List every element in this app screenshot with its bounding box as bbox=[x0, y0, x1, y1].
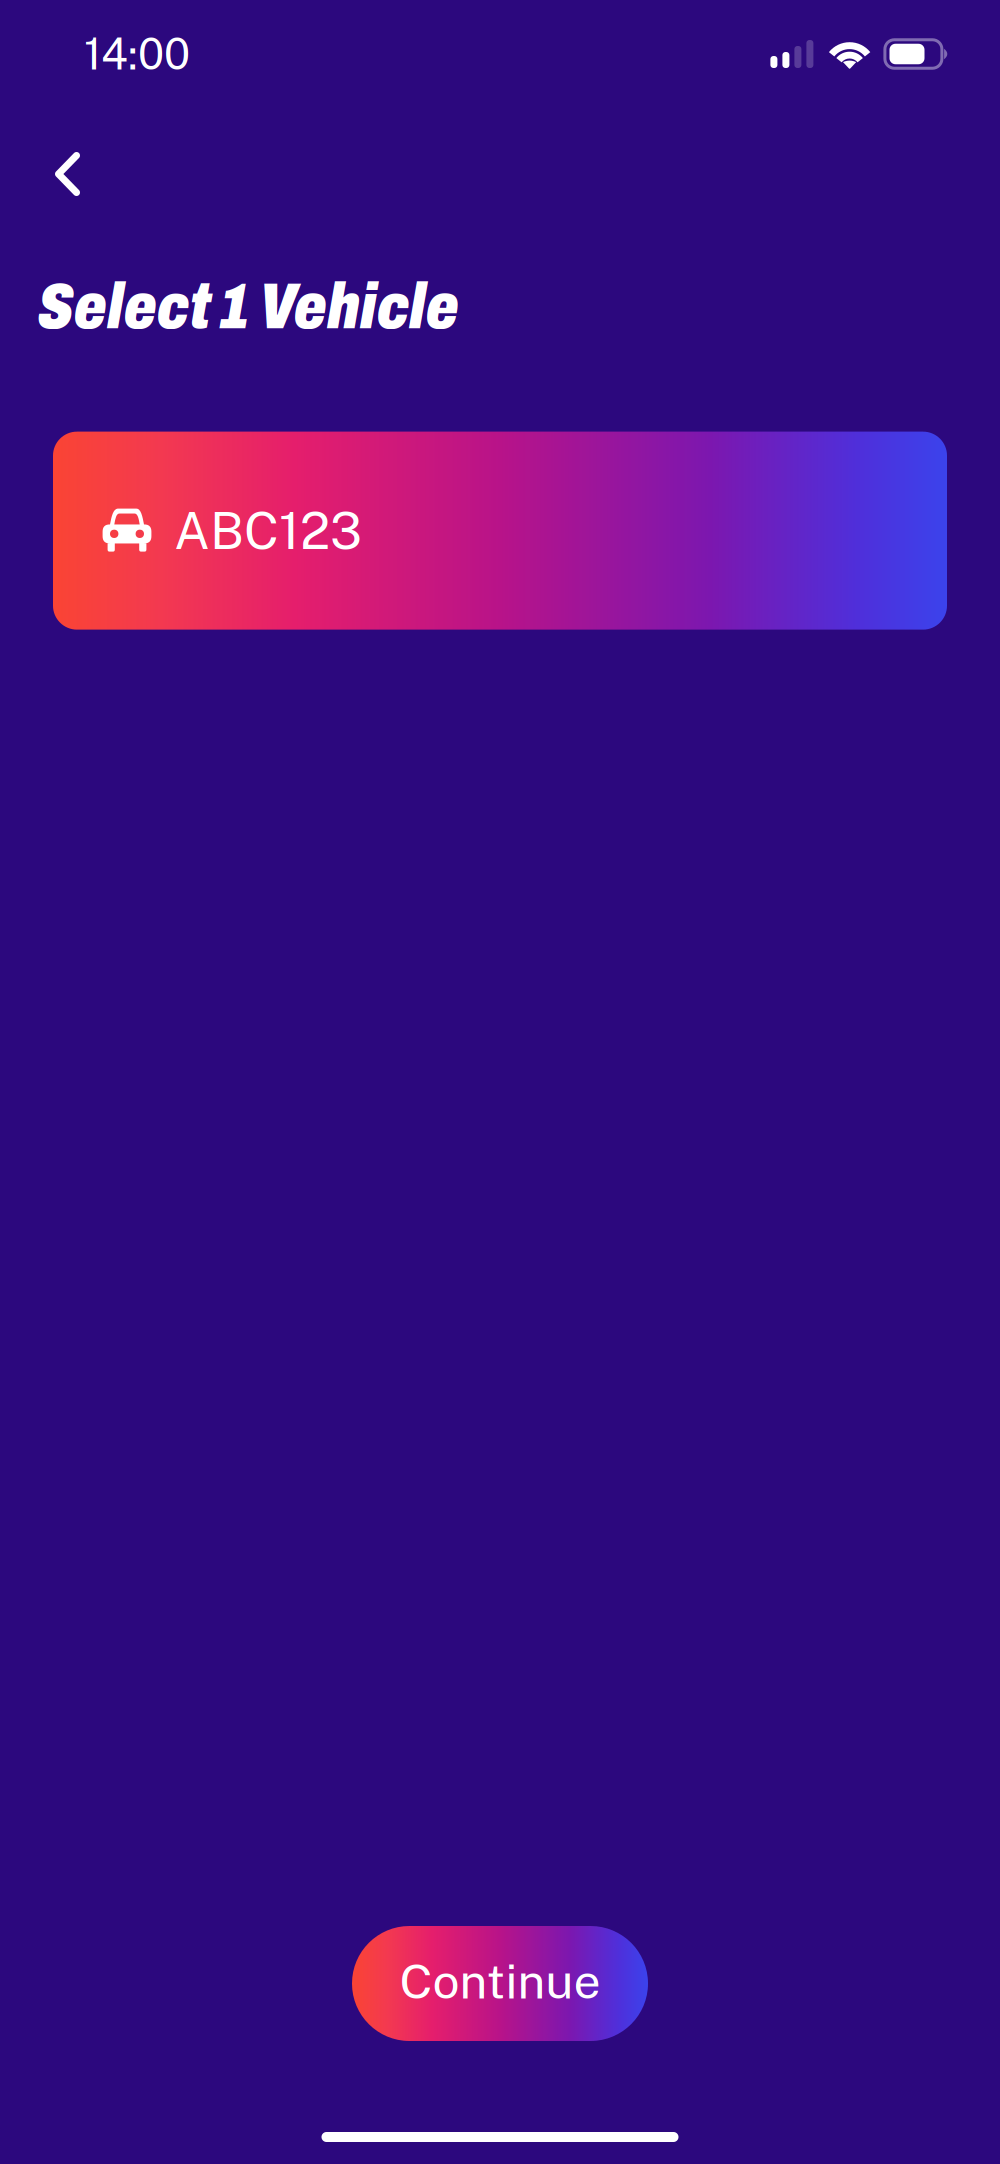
staticText: Continue bbox=[399, 1953, 600, 2009]
button[interactable]: Continue bbox=[352, 1926, 648, 2041]
staticText: Select 1 Vehicle bbox=[38, 272, 459, 342]
button[interactable]: ABC123 bbox=[53, 432, 947, 630]
staticText: ABC123 bbox=[174, 501, 362, 560]
staticText: 14:00 bbox=[84, 29, 190, 79]
button[interactable]: Back bbox=[0, 74, 117, 220]
